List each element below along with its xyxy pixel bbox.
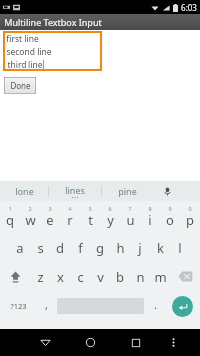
staticText: 6 bbox=[108, 205, 112, 212]
staticText: s bbox=[37, 239, 44, 257]
button[interactable]: lone bbox=[0, 181, 48, 201]
staticText: d bbox=[56, 239, 64, 257]
staticText: y bbox=[107, 211, 114, 229]
button[interactable]: 9 bbox=[160, 203, 180, 233]
button[interactable]: Shift bbox=[0, 262, 30, 291]
button[interactable]: Back bbox=[23, 329, 68, 356]
staticText: f bbox=[78, 239, 83, 257]
button[interactable]: Recent apps bbox=[113, 329, 158, 356]
staticText: 4 bbox=[68, 205, 72, 212]
button[interactable]: v bbox=[90, 262, 110, 291]
staticText: Done bbox=[10, 80, 31, 91]
staticText: 9 bbox=[168, 205, 172, 212]
button[interactable]: Backspace bbox=[170, 262, 200, 291]
staticText: w bbox=[25, 211, 36, 229]
staticText: 6:03 bbox=[181, 2, 197, 13]
staticText: pine bbox=[118, 185, 137, 197]
button[interactable]: Voice input bbox=[152, 181, 182, 201]
staticText: g bbox=[96, 239, 104, 257]
staticText: line bbox=[28, 59, 43, 71]
button[interactable]: 8 bbox=[140, 203, 160, 233]
button[interactable]: 6 bbox=[100, 203, 120, 233]
staticText: 8 bbox=[148, 205, 152, 212]
button[interactable]: j bbox=[130, 233, 150, 262]
staticText: e bbox=[46, 211, 54, 229]
staticText: t bbox=[88, 211, 93, 229]
button[interactable]: x bbox=[50, 262, 70, 291]
staticText: k bbox=[157, 239, 164, 257]
button[interactable]: f bbox=[70, 233, 90, 262]
button[interactable]: z bbox=[30, 262, 50, 291]
button[interactable]: 7 bbox=[120, 203, 140, 233]
button[interactable]: h bbox=[110, 233, 130, 262]
staticText: p bbox=[186, 211, 194, 229]
button[interactable]: b bbox=[110, 262, 130, 291]
button[interactable]: , bbox=[37, 291, 55, 321]
button[interactable]: More options bbox=[158, 329, 189, 356]
button[interactable]: 0 bbox=[180, 203, 200, 233]
staticText: 2 bbox=[28, 205, 32, 212]
staticText: z bbox=[37, 268, 44, 286]
staticText: . bbox=[154, 297, 157, 312]
staticText: o bbox=[166, 211, 174, 229]
staticText: third bbox=[6, 59, 28, 71]
button[interactable]: lines bbox=[49, 181, 101, 201]
staticText: l bbox=[178, 239, 182, 257]
button[interactable]: pine bbox=[102, 181, 152, 201]
staticText: v bbox=[97, 268, 104, 286]
button[interactable]: g bbox=[90, 233, 110, 262]
staticText: i bbox=[148, 211, 152, 229]
staticText: b bbox=[116, 268, 124, 286]
staticText: Multiline Textbox Input bbox=[4, 16, 102, 28]
button[interactable]: k bbox=[150, 233, 170, 262]
staticText: n bbox=[136, 268, 145, 286]
button[interactable]: s bbox=[30, 233, 50, 262]
staticText: h bbox=[116, 239, 125, 257]
staticText: x bbox=[57, 268, 64, 286]
button[interactable]: a bbox=[10, 233, 30, 262]
staticText: 0 bbox=[188, 205, 192, 212]
staticText: m bbox=[154, 268, 167, 286]
staticText: second line bbox=[6, 46, 52, 58]
staticText: 3 bbox=[48, 205, 52, 212]
button[interactable]: 3 bbox=[40, 203, 60, 233]
staticText: 7 bbox=[128, 205, 132, 212]
button[interactable]: Done bbox=[4, 77, 36, 94]
staticText: r bbox=[67, 211, 73, 229]
staticText: ?123 bbox=[10, 301, 27, 311]
staticText: 5 bbox=[88, 205, 92, 212]
button[interactable]: n bbox=[130, 262, 150, 291]
button[interactable]: Enter bbox=[172, 296, 193, 317]
button[interactable]: Home bbox=[68, 329, 113, 356]
button[interactable]: d bbox=[50, 233, 70, 262]
button[interactable]: 5 bbox=[80, 203, 100, 233]
button[interactable]: first line bbox=[3, 31, 102, 71]
staticText: c bbox=[77, 268, 84, 286]
button[interactable]: l bbox=[170, 233, 190, 262]
button[interactable]: c bbox=[70, 262, 90, 291]
button[interactable]: 4 bbox=[60, 203, 80, 233]
staticText: u bbox=[126, 211, 135, 229]
staticText: first line bbox=[6, 33, 39, 45]
staticText: lines bbox=[65, 184, 85, 196]
staticText: , bbox=[45, 297, 48, 312]
button[interactable]: . bbox=[146, 291, 164, 321]
button[interactable]: 2 bbox=[20, 203, 40, 233]
staticText: j bbox=[138, 239, 142, 257]
staticText: lone bbox=[15, 185, 34, 197]
staticText: 1 bbox=[8, 205, 12, 212]
button[interactable]: 1 bbox=[0, 203, 20, 233]
staticText: q bbox=[6, 211, 14, 229]
button[interactable]: ?123 bbox=[0, 291, 37, 321]
staticText: a bbox=[16, 239, 24, 257]
button[interactable]: m bbox=[150, 262, 170, 291]
